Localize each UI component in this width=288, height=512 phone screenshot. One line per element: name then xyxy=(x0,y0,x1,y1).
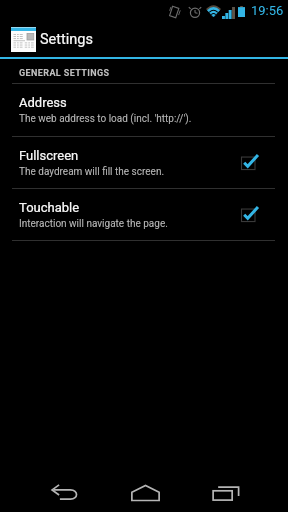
button[interactable]: Back xyxy=(30,467,98,512)
staticText: Touchable xyxy=(19,200,80,215)
button[interactable]: Home xyxy=(111,467,179,512)
staticText: Fullscreen xyxy=(19,148,79,163)
button[interactable]: Toggle setting xyxy=(241,195,275,235)
staticText: Settings xyxy=(40,31,93,48)
button[interactable]: Toggle setting xyxy=(241,143,275,183)
button[interactable]: Recent apps xyxy=(192,467,260,512)
button[interactable]: Address xyxy=(0,84,288,136)
button[interactable]: Settings xyxy=(0,21,288,57)
staticText: GENERAL SETTINGS xyxy=(19,68,110,79)
staticText: Interaction will navigate the page. xyxy=(19,218,168,230)
button[interactable]: Touchable xyxy=(0,189,288,240)
staticText: The daydream will fill the screen. xyxy=(19,166,165,178)
staticText: The web address to load (incl. 'http://'… xyxy=(19,113,192,125)
staticText: 19:56 xyxy=(251,3,284,18)
button[interactable]: Fullscreen xyxy=(0,137,288,188)
staticText: Address xyxy=(19,95,67,110)
